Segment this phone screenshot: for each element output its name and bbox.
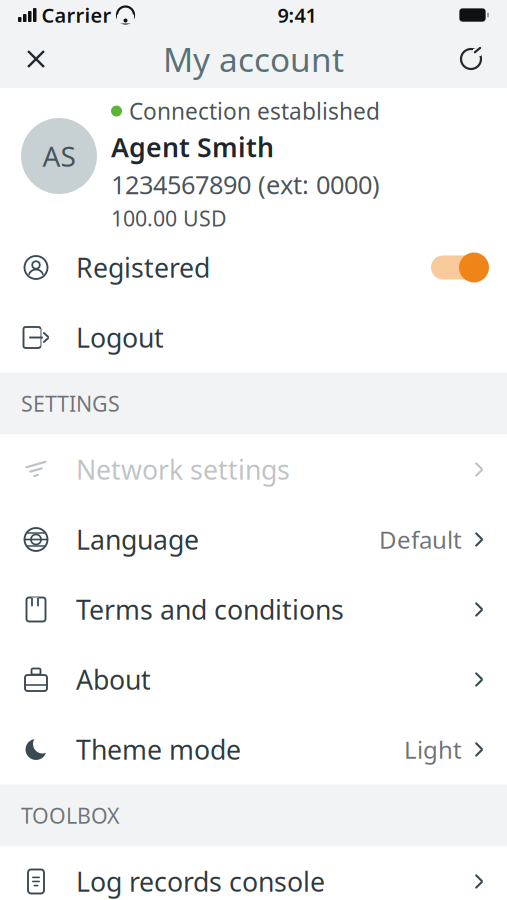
staticText: Theme mode — [76, 732, 241, 767]
button[interactable]: Registered — [0, 232, 507, 302]
button[interactable]: About — [0, 644, 507, 714]
staticText: 1234567890 (ext: 0000) — [111, 167, 380, 201]
staticText: My account — [163, 37, 344, 81]
button[interactable]: Network settings — [0, 434, 507, 504]
staticText: Light — [404, 734, 462, 765]
staticText: Network settings — [76, 452, 290, 487]
button[interactable]: Terms and conditions — [0, 574, 507, 644]
staticText: Default — [379, 524, 462, 555]
button[interactable]: Log records console — [0, 846, 507, 900]
button[interactable]: Language — [0, 504, 507, 574]
staticText: Log records console — [76, 864, 325, 899]
staticText: Connection established — [129, 96, 380, 126]
staticText: 100.00 USD — [111, 204, 227, 232]
staticText: Registered — [76, 250, 210, 285]
staticText: TOOLBOX — [21, 801, 120, 830]
button[interactable]: Refresh — [446, 34, 496, 84]
staticText: Agent Smith — [111, 129, 274, 164]
staticText: Carrier — [41, 2, 111, 28]
staticText: Terms and conditions — [76, 592, 344, 627]
button[interactable]: Logout — [0, 302, 507, 372]
button[interactable]: Theme mode — [0, 714, 507, 784]
staticText: Logout — [76, 320, 164, 355]
staticText: About — [76, 662, 151, 697]
staticText: SETTINGS — [21, 389, 120, 418]
staticText: 9:41 — [277, 2, 316, 28]
button[interactable]: Close — [11, 34, 61, 84]
staticText: Language — [76, 522, 199, 557]
staticText: AS — [42, 137, 75, 175]
